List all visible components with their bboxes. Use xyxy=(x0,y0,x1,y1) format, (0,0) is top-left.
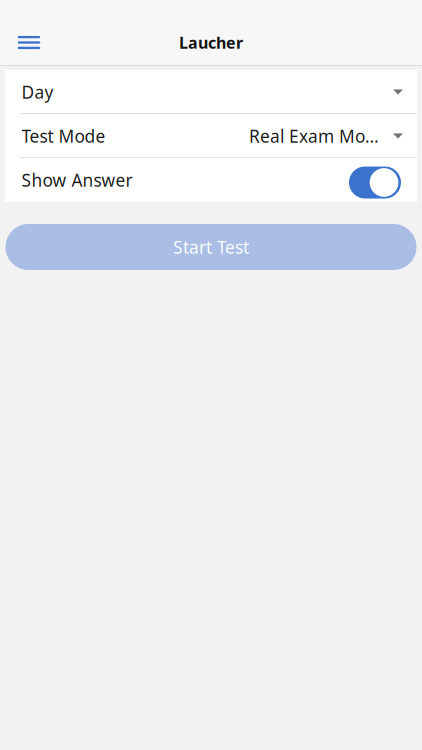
staticText: Real Exam Mo… xyxy=(249,124,379,147)
button[interactable]: Start Test xyxy=(5,224,416,270)
button[interactable]: Test Mode xyxy=(5,114,417,158)
button[interactable]: Day xyxy=(5,70,417,114)
staticText: Laucher xyxy=(179,32,243,53)
staticText: Test Mode xyxy=(21,124,105,147)
button[interactable]: Show Answer xyxy=(5,158,417,202)
staticText: Day xyxy=(21,80,53,103)
button[interactable]: Menu xyxy=(9,21,49,63)
staticText: Start Test xyxy=(173,235,249,258)
staticText: Show Answer xyxy=(21,168,132,191)
